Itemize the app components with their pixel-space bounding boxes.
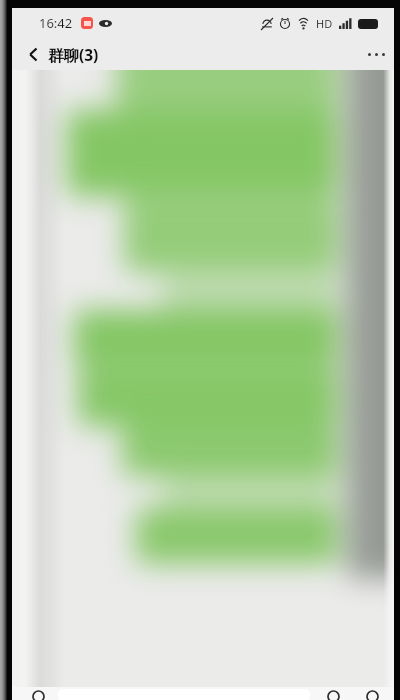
staticText: HD xyxy=(316,16,333,31)
button[interactable]: More options xyxy=(358,38,394,70)
staticText: 群聊(3) xyxy=(48,44,99,65)
staticText: 16:42 xyxy=(39,14,73,32)
button[interactable]: Back xyxy=(18,39,48,69)
button[interactable]: More functions xyxy=(360,690,384,700)
button[interactable]: Voice input xyxy=(26,690,50,700)
button[interactable]: Emoji xyxy=(321,690,345,700)
